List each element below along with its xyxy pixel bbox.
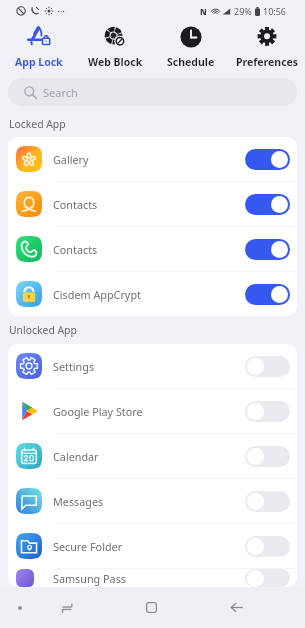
staticText: Search [43, 85, 78, 100]
button[interactable]: Toggle on [245, 239, 290, 260]
button[interactable]: Toggle off [245, 491, 290, 512]
button[interactable]: Web Block [77, 23, 153, 69]
staticText: Samsung Pass [53, 571, 245, 586]
staticText: Calendar [53, 449, 245, 464]
button[interactable]: Samsung Pass [8, 569, 297, 587]
button[interactable]: Toggle on [245, 149, 290, 170]
staticText: N [200, 6, 207, 17]
button[interactable]: Contacts [8, 227, 297, 271]
staticText: 10:56 [263, 5, 287, 17]
staticText: 29% [234, 5, 252, 17]
button[interactable]: Keyboard indicator [13, 601, 27, 615]
button[interactable]: Preferences [229, 23, 305, 69]
staticText: ··· [57, 4, 66, 18]
button[interactable]: Home [138, 594, 165, 621]
button[interactable]: Gallery [8, 137, 297, 181]
staticText: Secure Folder [53, 539, 245, 554]
staticText: Web Block [88, 55, 143, 69]
button[interactable]: Toggle on [245, 194, 290, 215]
staticText: Schedule [167, 55, 215, 69]
staticText: Settings [53, 359, 245, 374]
button[interactable]: Toggle off [245, 356, 290, 377]
staticText: Preferences [236, 55, 299, 69]
button[interactable]: Messages [8, 479, 297, 523]
button[interactable]: Search [8, 78, 297, 106]
button[interactable]: Settings [8, 344, 297, 388]
button[interactable]: Toggle on [245, 284, 290, 305]
staticText: Gallery [53, 152, 245, 167]
staticText: Contacts [53, 197, 245, 212]
button[interactable]: Contacts [8, 182, 297, 226]
staticText: App Lock [15, 55, 63, 69]
button[interactable]: Google Play Store [8, 389, 297, 433]
button[interactable]: Recents [53, 594, 80, 621]
button[interactable]: Toggle off [245, 569, 290, 587]
button[interactable]: Toggle off [245, 536, 290, 557]
staticText: Contacts [53, 242, 245, 257]
staticText: Unlocked App [9, 323, 77, 337]
button[interactable]: Toggle off [245, 446, 290, 467]
staticText: Messages [53, 494, 245, 509]
staticText: Locked App [9, 117, 66, 131]
button[interactable]: Cisdem AppCrypt [8, 272, 297, 316]
staticText: Cisdem AppCrypt [53, 287, 245, 302]
staticText: Google Play Store [53, 404, 245, 419]
button[interactable]: App Lock [0, 23, 77, 69]
button[interactable]: Secure Folder [8, 524, 297, 568]
button[interactable]: Toggle off [245, 401, 290, 422]
button[interactable]: Calendar [8, 434, 297, 478]
button[interactable]: Back [223, 594, 250, 621]
button[interactable]: Schedule [153, 23, 229, 69]
